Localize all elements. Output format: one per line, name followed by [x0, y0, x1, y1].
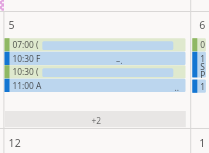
button[interactable]: Calendar month grid — [0, 0, 209, 153]
